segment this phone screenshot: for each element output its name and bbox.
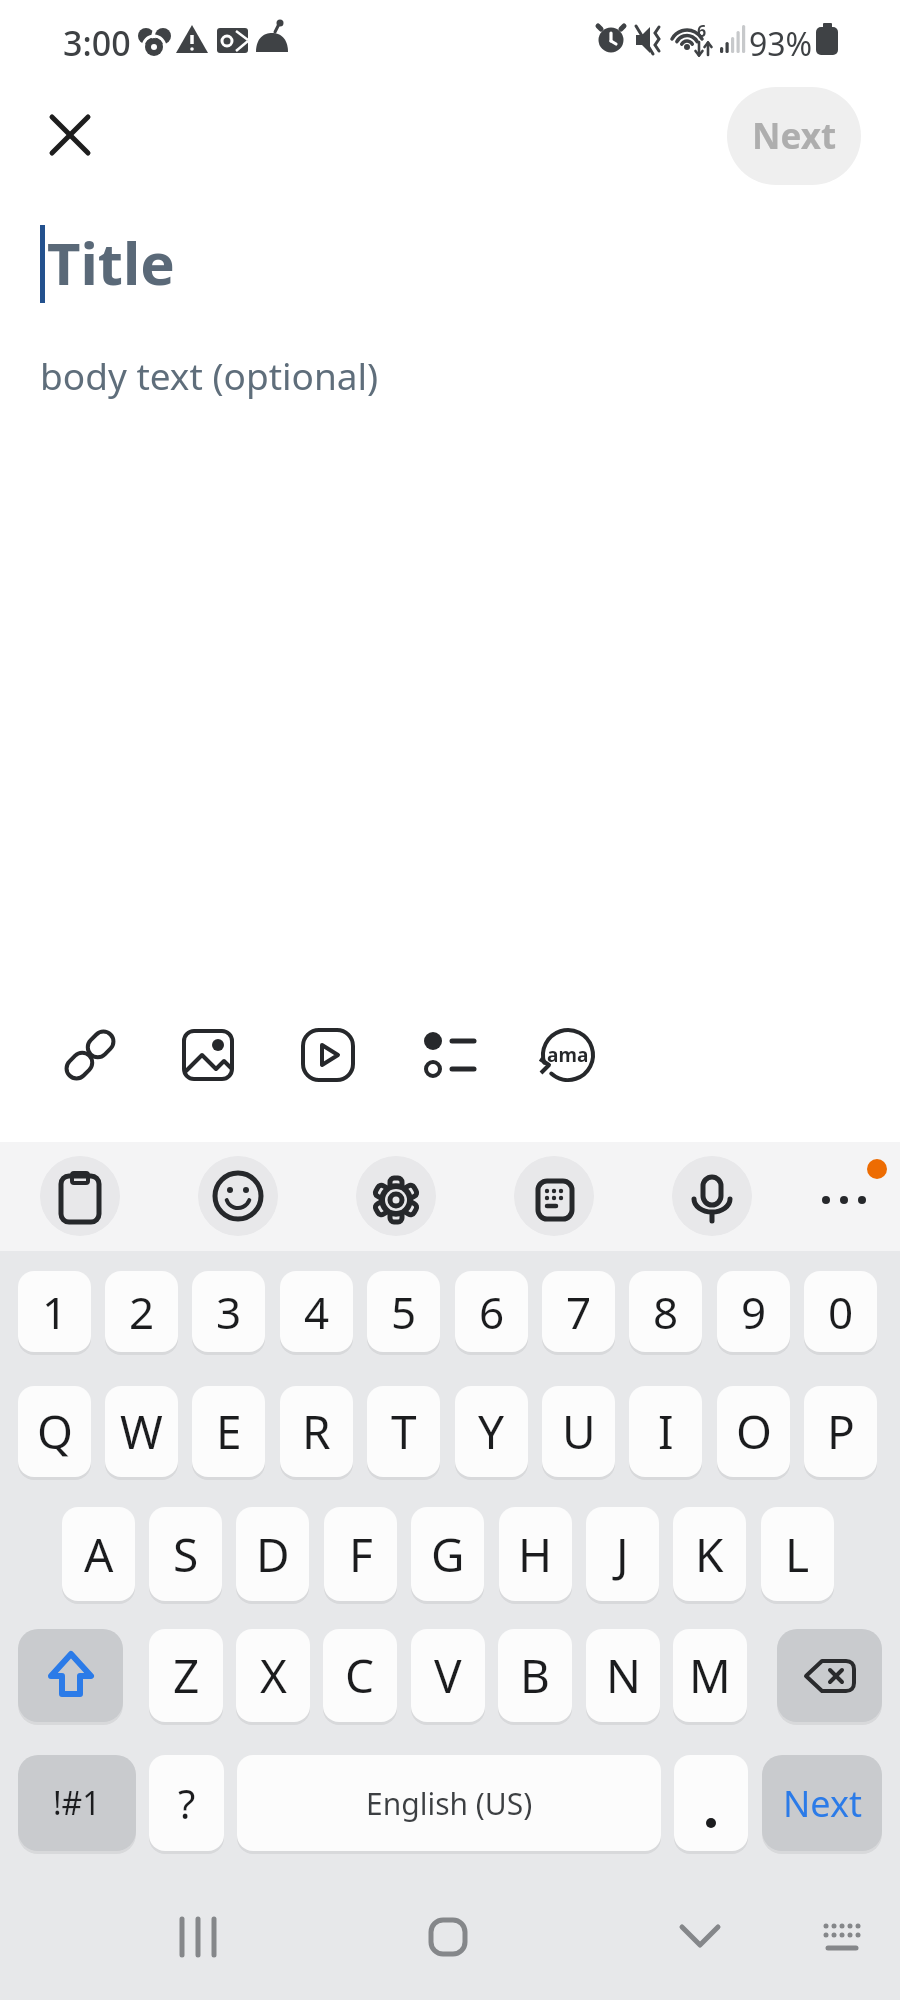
- button[interactable]: [664, 1901, 736, 1973]
- button[interactable]: Next: [727, 87, 861, 185]
- button[interactable]: [62, 1027, 118, 1083]
- button[interactable]: X: [236, 1629, 310, 1722]
- button[interactable]: V: [411, 1629, 485, 1722]
- button[interactable]: [18, 1629, 123, 1722]
- staticText: 9: [741, 1282, 767, 1342]
- button[interactable]: M: [673, 1629, 747, 1722]
- button[interactable]: 8: [629, 1271, 702, 1352]
- staticText: N: [606, 1644, 641, 1707]
- staticText: Next: [783, 1779, 862, 1828]
- button[interactable]: [672, 1156, 752, 1236]
- staticText: U: [562, 1400, 596, 1463]
- button[interactable]: Next: [762, 1755, 882, 1851]
- staticText: X: [260, 1644, 287, 1707]
- button[interactable]: !#1: [18, 1755, 136, 1851]
- button[interactable]: 3: [192, 1271, 265, 1352]
- staticText: 5: [391, 1282, 417, 1342]
- button[interactable]: 4: [280, 1271, 353, 1352]
- button[interactable]: [422, 1031, 476, 1079]
- button[interactable]: P: [804, 1386, 877, 1477]
- button[interactable]: [777, 1629, 882, 1722]
- button[interactable]: [514, 1156, 594, 1236]
- button[interactable]: 9: [717, 1271, 790, 1352]
- button[interactable]: E: [192, 1386, 265, 1477]
- button[interactable]: 5: [367, 1271, 440, 1352]
- button[interactable]: 6: [455, 1271, 528, 1352]
- staticText: Y: [478, 1400, 505, 1463]
- staticText: H: [518, 1523, 553, 1586]
- staticText: !#1: [53, 1781, 101, 1825]
- staticText: M: [689, 1644, 731, 1707]
- button[interactable]: [40, 1156, 120, 1236]
- staticText: body text (optional): [40, 350, 379, 400]
- button[interactable]: Y: [455, 1386, 528, 1477]
- button[interactable]: A: [62, 1507, 135, 1601]
- staticText: G: [431, 1523, 465, 1586]
- button[interactable]: [356, 1156, 436, 1236]
- staticText: 8: [653, 1282, 679, 1342]
- button[interactable]: 1: [18, 1271, 91, 1352]
- button[interactable]: G: [411, 1507, 484, 1601]
- staticText: 3: [216, 1282, 242, 1342]
- button[interactable]: L: [761, 1507, 834, 1601]
- staticText: S: [173, 1523, 199, 1586]
- staticText: D: [256, 1523, 290, 1586]
- staticText: E: [216, 1400, 242, 1463]
- button[interactable]: U: [542, 1386, 615, 1477]
- staticText: 7: [566, 1282, 592, 1342]
- button[interactable]: F: [324, 1507, 397, 1601]
- staticText: 4: [304, 1282, 330, 1342]
- staticText: Q: [37, 1400, 73, 1463]
- button[interactable]: [182, 1029, 236, 1081]
- button[interactable]: [806, 1901, 878, 1973]
- button[interactable]: N: [586, 1629, 660, 1722]
- button[interactable]: 7: [542, 1271, 615, 1352]
- button[interactable]: 2: [105, 1271, 178, 1352]
- staticText: Title: [47, 223, 175, 302]
- staticText: ama: [547, 1042, 589, 1068]
- button[interactable]: S: [149, 1507, 222, 1601]
- staticText: 93%: [749, 22, 813, 66]
- button[interactable]: H: [499, 1507, 572, 1601]
- button[interactable]: English (US): [237, 1755, 661, 1851]
- staticText: W: [120, 1400, 163, 1463]
- button[interactable]: W: [105, 1386, 178, 1477]
- staticText: Z: [173, 1644, 200, 1707]
- staticText: B: [520, 1644, 550, 1707]
- button[interactable]: [198, 1156, 278, 1236]
- button[interactable]: [301, 1029, 355, 1081]
- staticText: C: [345, 1644, 375, 1707]
- button[interactable]: ama: [539, 1027, 597, 1083]
- staticText: Next: [752, 112, 837, 160]
- button[interactable]: D: [236, 1507, 309, 1601]
- button[interactable]: [38, 103, 102, 167]
- staticText: K: [695, 1523, 724, 1586]
- button[interactable]: Z: [149, 1629, 223, 1722]
- staticText: English (US): [366, 1783, 533, 1824]
- staticText: 6: [697, 20, 707, 42]
- staticText: A: [84, 1523, 114, 1586]
- button[interactable]: [162, 1901, 234, 1973]
- button[interactable]: Q: [18, 1386, 91, 1477]
- button[interactable]: J: [586, 1507, 659, 1601]
- staticText: T: [391, 1400, 417, 1463]
- staticText: L: [785, 1523, 810, 1586]
- button[interactable]: I: [629, 1386, 702, 1477]
- staticText: F: [349, 1523, 373, 1586]
- staticText: P: [827, 1400, 855, 1463]
- button[interactable]: B: [498, 1629, 572, 1722]
- button[interactable]: [412, 1901, 484, 1973]
- staticText: O: [736, 1400, 772, 1463]
- button[interactable]: O: [717, 1386, 790, 1477]
- button[interactable]: C: [323, 1629, 397, 1722]
- staticText: 2: [129, 1282, 155, 1342]
- staticText: R: [302, 1400, 331, 1463]
- button[interactable]: R: [280, 1386, 353, 1477]
- staticText: J: [616, 1523, 629, 1586]
- button[interactable]: [674, 1755, 748, 1851]
- button[interactable]: K: [673, 1507, 746, 1601]
- button[interactable]: 0: [804, 1271, 877, 1352]
- button[interactable]: ?: [149, 1755, 224, 1851]
- staticText: 6: [479, 1282, 505, 1342]
- button[interactable]: T: [367, 1386, 440, 1477]
